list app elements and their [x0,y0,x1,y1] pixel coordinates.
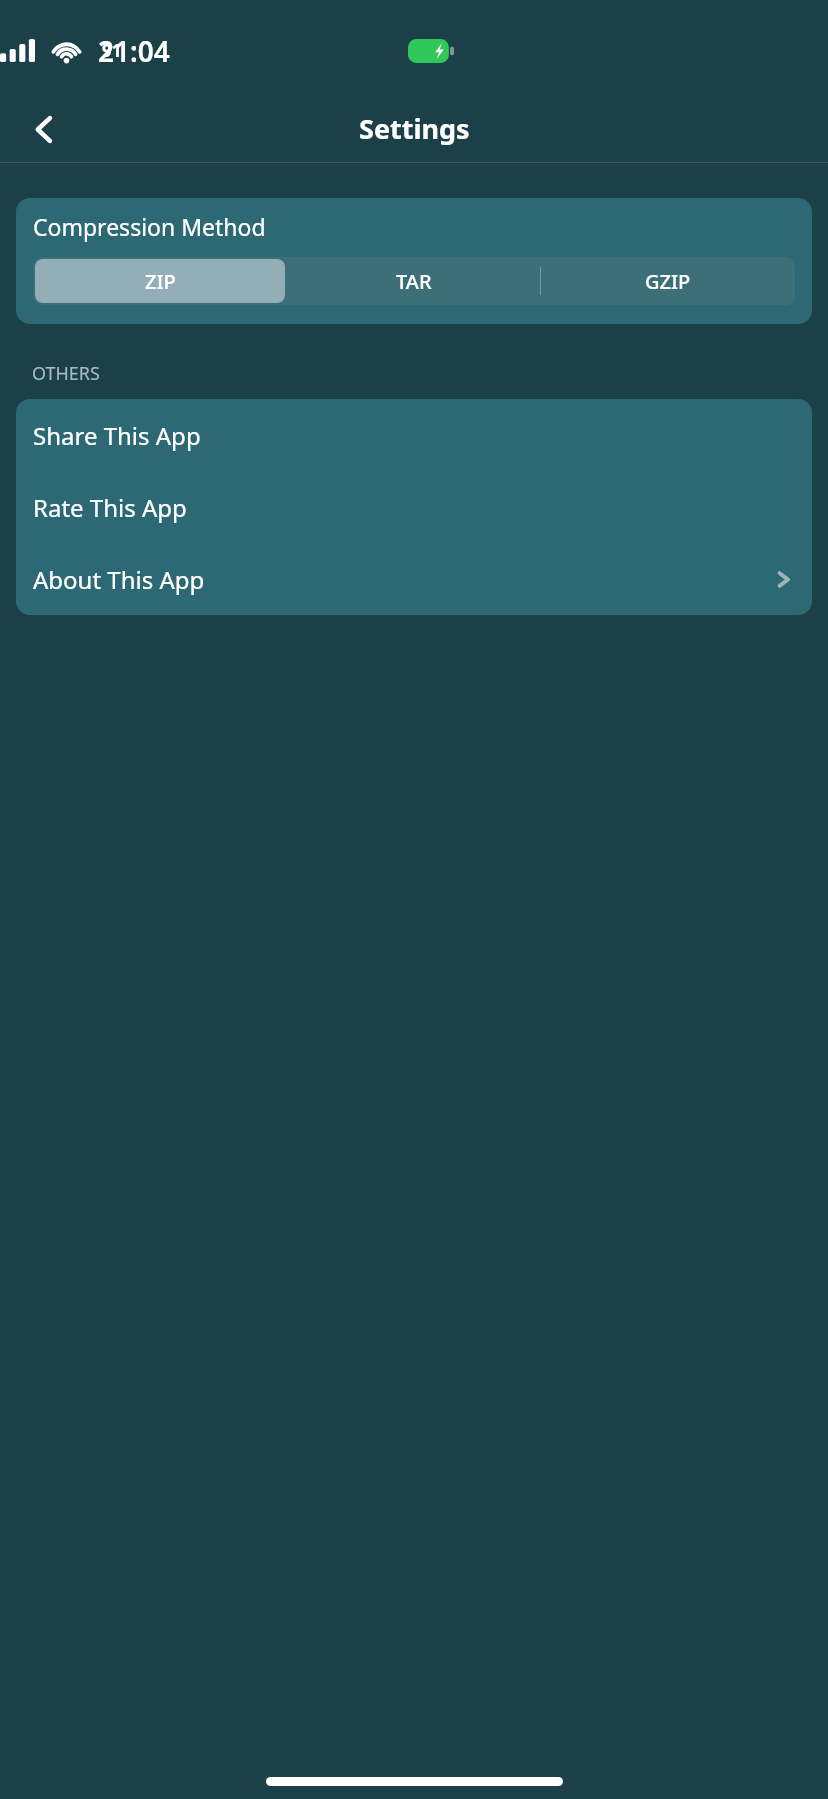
staticText: 91 [102,39,122,62]
staticText: GZIP [645,268,691,295]
button[interactable]: GZIP [541,257,795,305]
button[interactable]: ZIP [35,259,285,303]
staticText: TAR [396,268,432,295]
staticText: 21:04 [98,32,170,70]
staticText: About This App [33,563,774,596]
staticText: OTHERS [32,361,100,386]
staticText: ZIP [145,268,176,295]
button[interactable]: About This App [16,543,812,615]
staticText: Share This App [33,419,793,452]
staticText: Rate This App [33,491,793,524]
button[interactable]: Rate This App [16,471,812,543]
button[interactable]: Share This App [16,399,812,471]
staticText: Settings [359,110,470,147]
button[interactable]: Back [16,101,72,157]
staticText: Compression Method [33,211,266,242]
button[interactable]: TAR [287,257,541,305]
